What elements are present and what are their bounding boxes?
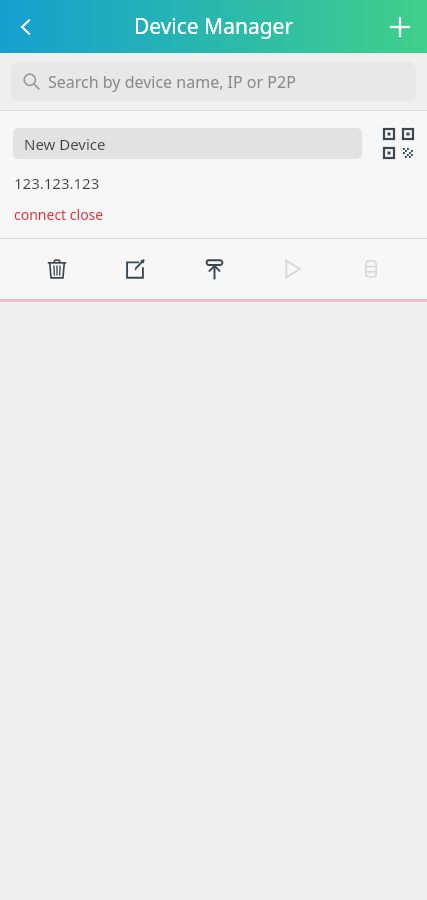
staticText: 123.123.123 <box>14 173 100 193</box>
button[interactable]: Add device <box>373 0 427 53</box>
button[interactable]: Delete <box>27 239 87 299</box>
staticText: connect close <box>14 205 104 224</box>
button[interactable]: Scan QR code <box>383 128 414 159</box>
staticText: Search by device name, IP or P2P <box>48 71 296 93</box>
button[interactable]: Search by device name, IP or P2P <box>11 62 416 101</box>
button[interactable]: Play <box>262 239 322 299</box>
button[interactable]: Upload <box>184 239 244 299</box>
button[interactable]: New Device <box>13 128 362 159</box>
button[interactable]: Storage <box>341 239 401 299</box>
button[interactable]: Edit <box>105 239 165 299</box>
staticText: Device Manager <box>0 12 427 41</box>
button[interactable]: Back <box>0 1 52 53</box>
staticText: New Device <box>24 134 106 154</box>
